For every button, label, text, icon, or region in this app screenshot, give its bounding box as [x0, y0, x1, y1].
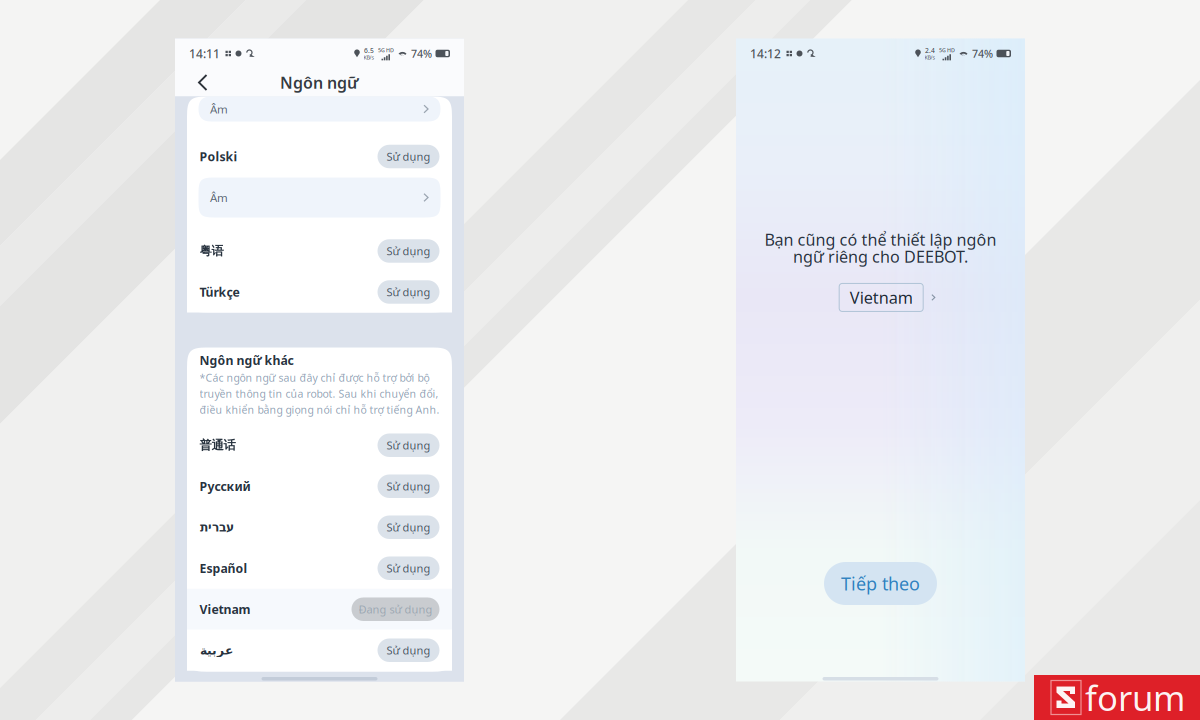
staticText: 普通话: [199, 437, 235, 453]
staticText: Sử dụng: [386, 438, 430, 453]
staticText: Sử dụng: [386, 561, 430, 576]
button[interactable]: Türkçe: [187, 271, 452, 312]
button[interactable]: عربية: [187, 630, 452, 671]
button[interactable]: Tiếp theo: [824, 562, 937, 605]
staticText: Âm: [210, 101, 228, 117]
staticText: Âm: [210, 190, 228, 205]
staticText: Bạn cũng có thể thiết lập ngôn: [764, 228, 996, 250]
staticText: Vietnam: [850, 286, 913, 309]
staticText: forum: [1085, 674, 1185, 720]
staticText: Sử dụng: [386, 479, 430, 494]
button[interactable]: Âm: [198, 96, 440, 121]
staticText: 2.4: [925, 46, 935, 55]
staticText: Sử dụng: [386, 243, 430, 259]
staticText: Español: [199, 560, 247, 577]
staticText: điều khiển bằng giọng nói chỉ hỗ trợ tiế…: [199, 402, 439, 417]
staticText: *Các ngôn ngữ sau đây chỉ được hỗ trợ bở…: [199, 370, 429, 385]
staticText: truyền thông tin của robot. Sau khi chuy…: [199, 386, 438, 401]
staticText: Türkçe: [199, 284, 239, 300]
staticText: 74%: [972, 46, 993, 61]
staticText: 粤语: [199, 243, 223, 259]
staticText: Đang sử dụng: [358, 602, 432, 617]
staticText: 14:12: [750, 45, 781, 61]
staticText: Ngôn ngữ khác: [199, 352, 293, 368]
staticText: Vietnam: [199, 601, 250, 618]
staticText: Tiếp theo: [841, 571, 920, 596]
button[interactable]: Vietnam: [187, 589, 452, 630]
staticText: KB/s: [924, 54, 935, 61]
button[interactable]: Âm: [198, 177, 440, 217]
button[interactable]: 粤语: [187, 230, 452, 271]
staticText: KB/s: [363, 54, 374, 61]
staticText: Sử dụng: [386, 643, 430, 658]
staticText: عربية: [199, 643, 232, 657]
staticText: Русский: [199, 478, 250, 495]
button[interactable]: Back: [188, 68, 218, 96]
staticText: Sử dụng: [386, 284, 430, 300]
staticText: Polski: [199, 148, 237, 165]
button[interactable]: Vietnam: [839, 283, 923, 311]
button[interactable]: Русский: [187, 466, 452, 507]
staticText: 6.5: [364, 46, 374, 55]
staticText: Sử dụng: [386, 520, 430, 535]
staticText: 5G HD: [378, 47, 394, 54]
staticText: 74%: [411, 46, 432, 61]
staticText: Ngôn ngữ: [280, 72, 359, 93]
button[interactable]: Español: [187, 548, 452, 589]
button[interactable]: Polski: [187, 135, 452, 177]
staticText: 5G HD: [939, 47, 955, 54]
staticText: עברית: [199, 520, 233, 534]
staticText: 14:11: [189, 45, 220, 61]
staticText: ngữ riêng cho DEEBOT.: [793, 245, 968, 267]
staticText: Sử dụng: [386, 149, 430, 164]
button[interactable]: עברית: [187, 507, 452, 548]
button[interactable]: 普通话: [187, 425, 452, 466]
